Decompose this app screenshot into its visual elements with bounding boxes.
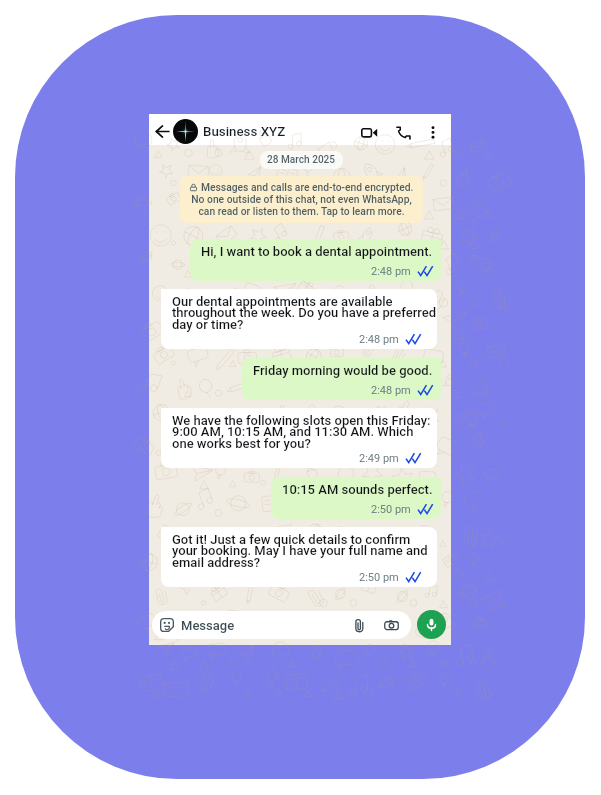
button[interactable]: Voice call xyxy=(393,122,413,142)
staticText: Message xyxy=(181,618,235,633)
button[interactable]: Our dental appointments are available th… xyxy=(161,289,437,349)
staticText: 2:50 pm xyxy=(371,503,411,515)
button[interactable]: Video call xyxy=(359,122,379,142)
button[interactable]: Camera xyxy=(384,618,399,633)
staticText: No one outside of this chat, not even Wh… xyxy=(191,193,412,218)
button[interactable]: 10:15 AM sounds perfect. xyxy=(271,477,441,519)
staticText: 10:15 AM sounds perfect. xyxy=(282,482,433,497)
staticText: Our dental appointments are available th… xyxy=(172,294,437,332)
staticText: Friday morning would be good. xyxy=(253,363,433,378)
button[interactable]: 28 March 2025 xyxy=(260,151,343,169)
button[interactable]: Friday morning would be good. xyxy=(242,358,441,400)
button[interactable]: Hi, I want to book a dental appointment. xyxy=(190,239,441,281)
staticText: Messages and calls are end-to-end encryp… xyxy=(201,181,414,193)
button[interactable]: Voice message xyxy=(417,610,446,639)
button[interactable]: Message xyxy=(152,611,411,639)
button[interactable]: Messages and calls are end-to-end encryp… xyxy=(180,176,423,223)
button[interactable]: Back xyxy=(153,122,172,141)
staticText: 2:48 pm xyxy=(359,333,399,345)
staticText: 2:50 pm xyxy=(359,571,399,583)
staticText: Hi, I want to book a dental appointment. xyxy=(201,244,433,259)
staticText: Business XYZ xyxy=(203,124,286,140)
button[interactable]: Got it! Just a few quick details to conf… xyxy=(161,527,437,587)
staticText: 28 March 2025 xyxy=(267,154,336,166)
button[interactable]: More options xyxy=(424,123,442,141)
staticText: 2:49 pm xyxy=(359,452,399,464)
button[interactable]: Attach xyxy=(352,618,367,633)
staticText: 2:48 pm xyxy=(371,384,411,396)
staticText: Got it! Just a few quick details to conf… xyxy=(172,532,428,570)
staticText: We have the following slots open this Fr… xyxy=(172,413,431,451)
button[interactable]: We have the following slots open this Fr… xyxy=(161,408,437,468)
staticText: 2:48 pm xyxy=(371,265,411,277)
